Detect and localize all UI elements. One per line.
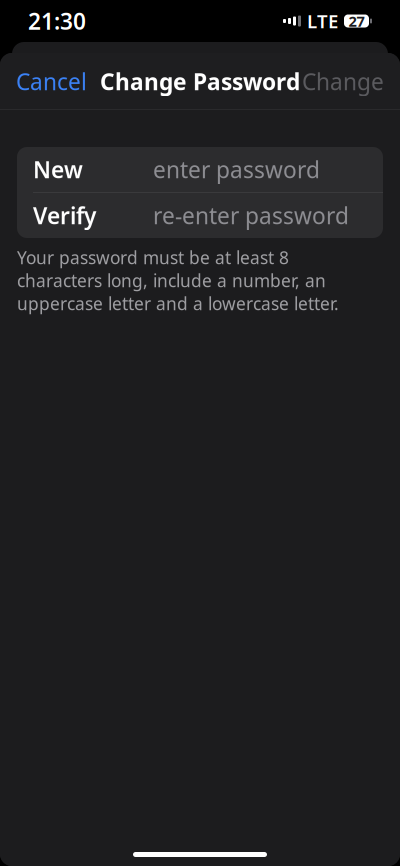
staticText: LTE bbox=[307, 9, 338, 33]
staticText: enter password bbox=[153, 154, 320, 184]
button[interactable]: Cancel bbox=[0, 54, 103, 108]
staticText: New bbox=[33, 154, 83, 184]
staticText: Cancel bbox=[16, 66, 87, 96]
staticText: 27 bbox=[348, 11, 364, 31]
staticText: Your password must be at least 8 charact… bbox=[17, 246, 339, 315]
staticText: re-enter password bbox=[153, 200, 349, 230]
staticText: 21:30 bbox=[28, 6, 86, 36]
staticText: Verify bbox=[33, 200, 96, 230]
button[interactable]: Verify bbox=[17, 193, 383, 238]
staticText: Change bbox=[302, 66, 384, 96]
button[interactable]: New bbox=[17, 147, 383, 192]
button[interactable]: Change bbox=[286, 54, 400, 108]
staticText: Change Password bbox=[100, 66, 300, 96]
